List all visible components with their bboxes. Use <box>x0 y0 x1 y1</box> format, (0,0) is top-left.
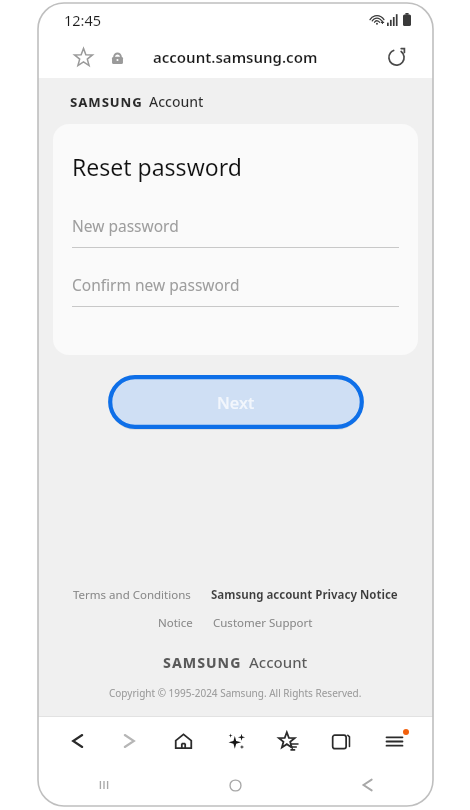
button[interactable]: account.samsung.com <box>153 47 318 67</box>
staticText: Next <box>217 391 255 413</box>
button[interactable]: Customer Support <box>213 615 313 631</box>
button[interactable]: Notice <box>158 615 193 631</box>
button[interactable]: Bookmarks <box>269 719 307 763</box>
staticText: Confirm new password <box>72 274 240 295</box>
staticText: SAMSUNG <box>163 653 242 672</box>
button[interactable]: Home <box>164 719 202 763</box>
button[interactable]: Back <box>301 764 433 806</box>
button[interactable]: New password <box>72 215 399 248</box>
staticText: New password <box>72 215 179 236</box>
button[interactable]: Tabs <box>322 719 360 763</box>
button[interactable]: Site security <box>104 44 130 70</box>
button[interactable]: Terms and Conditions <box>73 587 191 603</box>
staticText: 12:45 <box>64 10 102 30</box>
button[interactable]: Confirm new password <box>72 274 399 307</box>
button[interactable]: Menu <box>375 719 413 763</box>
button[interactable]: Reload <box>381 42 411 72</box>
button[interactable]: Next <box>107 374 365 430</box>
staticText: SAMSUNG <box>70 93 143 111</box>
button[interactable]: Recents <box>38 764 169 806</box>
button[interactable]: Bookmark page <box>68 42 98 72</box>
button[interactable]: Samsung account Privacy Notice <box>211 587 398 603</box>
button[interactable]: Back <box>58 719 96 763</box>
button[interactable]: Forward <box>111 719 149 763</box>
staticText: Copyright © 1995-2024 Samsung. All Right… <box>109 686 362 700</box>
staticText: Account <box>149 92 204 111</box>
button[interactable]: Assistant <box>217 719 255 763</box>
staticText: Reset password <box>72 151 242 182</box>
staticText: Account <box>249 652 308 672</box>
button[interactable]: Home <box>169 764 301 806</box>
